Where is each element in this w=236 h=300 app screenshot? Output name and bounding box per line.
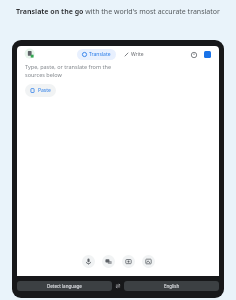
staticText: Write — [131, 51, 144, 58]
button[interactable]: History — [189, 50, 198, 59]
staticText: Translate — [89, 51, 111, 58]
staticText: English — [164, 283, 180, 289]
button[interactable]: Microphone — [82, 255, 95, 268]
button[interactable]: Detect language — [17, 281, 112, 291]
button[interactable]: Paste — [25, 84, 56, 97]
button[interactable]: Image — [142, 255, 155, 268]
button[interactable]: Camera — [122, 255, 135, 268]
staticText: Type, paste, or translate from the sourc… — [25, 63, 111, 79]
button[interactable]: Translate — [77, 49, 116, 60]
button[interactable]: Write — [121, 49, 147, 60]
button[interactable]: Swap languages — [112, 280, 124, 292]
button[interactable]: English — [124, 281, 219, 291]
button[interactable]: Google Translate — [25, 49, 36, 60]
button[interactable]: Conversation — [102, 255, 115, 268]
staticText: Translate on the go with the world's mos… — [16, 7, 220, 17]
staticText: Detect language — [47, 283, 82, 289]
button[interactable]: Account — [204, 51, 211, 58]
staticText: Paste — [38, 87, 51, 94]
